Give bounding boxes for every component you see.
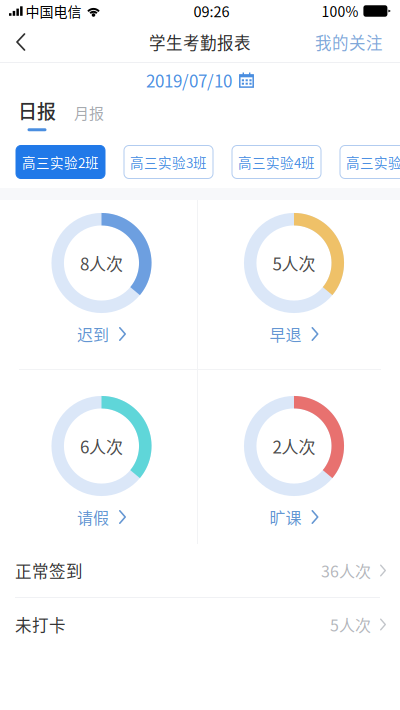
staticText: 6人次 xyxy=(80,434,123,458)
staticText: 正常签到 xyxy=(15,559,83,582)
staticText: 请假 xyxy=(77,505,109,529)
staticText: 学生考勤报表 xyxy=(149,30,251,54)
staticText: 我的关注 xyxy=(315,30,383,54)
staticText: 月报 xyxy=(74,102,104,123)
button[interactable]: 高三实验5班 xyxy=(340,145,400,178)
button[interactable]: 日报 xyxy=(15,97,59,136)
staticText: 5人次 xyxy=(272,251,315,275)
staticText: 高三实验4班 xyxy=(238,152,315,172)
staticText: 未打卡 xyxy=(15,613,66,636)
button[interactable]: 高三实验2班 xyxy=(16,145,105,178)
button[interactable]: 2019/07/10 xyxy=(146,63,254,97)
button[interactable]: 正常签到 xyxy=(0,544,400,598)
button[interactable]: 6人次 xyxy=(130,370,270,544)
button[interactable]: 2人次 xyxy=(130,370,270,544)
button[interactable]: 我的关注 xyxy=(303,22,400,62)
staticText: 2019/07/10 xyxy=(146,68,232,92)
button[interactable]: 月报 xyxy=(69,93,109,140)
staticText: 旷课 xyxy=(269,505,301,529)
staticText: 8人次 xyxy=(80,251,123,275)
button[interactable]: Back xyxy=(0,22,40,62)
staticText: 中国电信 xyxy=(25,1,81,21)
staticText: 高三实验3班 xyxy=(130,152,207,172)
staticText: 高三实验2班 xyxy=(22,152,99,172)
staticText: 早退 xyxy=(269,322,301,346)
button[interactable]: 8人次 xyxy=(130,200,270,369)
staticText: 09:26 xyxy=(193,0,229,21)
staticText: 迟到 xyxy=(77,322,109,346)
staticText: 高三实验5班 xyxy=(346,152,400,172)
staticText: 5人次 xyxy=(330,613,371,636)
staticText: 36人次 xyxy=(321,559,371,582)
staticText: 2人次 xyxy=(272,434,315,458)
button[interactable]: 高三实验4班 xyxy=(232,145,321,178)
button[interactable]: 未打卡 xyxy=(0,598,400,652)
button[interactable]: 高三实验3班 xyxy=(124,145,213,178)
staticText: 日报 xyxy=(18,97,56,124)
button[interactable]: 5人次 xyxy=(130,200,270,369)
staticText: 100% xyxy=(321,1,358,21)
